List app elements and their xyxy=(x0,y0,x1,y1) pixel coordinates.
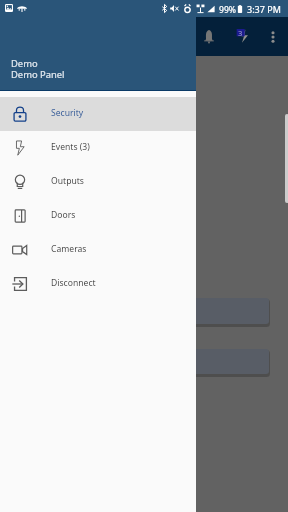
button[interactable]: Cameras xyxy=(0,233,196,267)
button[interactable]: Doors xyxy=(0,199,196,233)
button[interactable]: Events xyxy=(226,23,256,50)
staticText: Demo Panel xyxy=(11,68,65,81)
button[interactable]: Disconnect xyxy=(0,267,196,301)
button[interactable]: Notifications xyxy=(194,23,224,50)
button[interactable]: More options xyxy=(258,23,287,50)
staticText: Cameras xyxy=(51,243,87,255)
button[interactable]: Outputs xyxy=(0,165,196,199)
staticText: Demo xyxy=(11,57,38,70)
staticText: Disconnect xyxy=(51,277,96,289)
staticText: Doors xyxy=(51,209,76,221)
staticText: 3:37 PM xyxy=(247,3,281,15)
button[interactable]: Security xyxy=(0,97,196,131)
staticText: Security xyxy=(51,107,84,119)
button[interactable]: Events (3) xyxy=(0,131,196,165)
staticText: 99% xyxy=(219,4,236,16)
staticText: Outputs xyxy=(51,175,84,187)
staticText: 3 xyxy=(238,28,243,38)
staticText: Events (3) xyxy=(51,141,90,153)
